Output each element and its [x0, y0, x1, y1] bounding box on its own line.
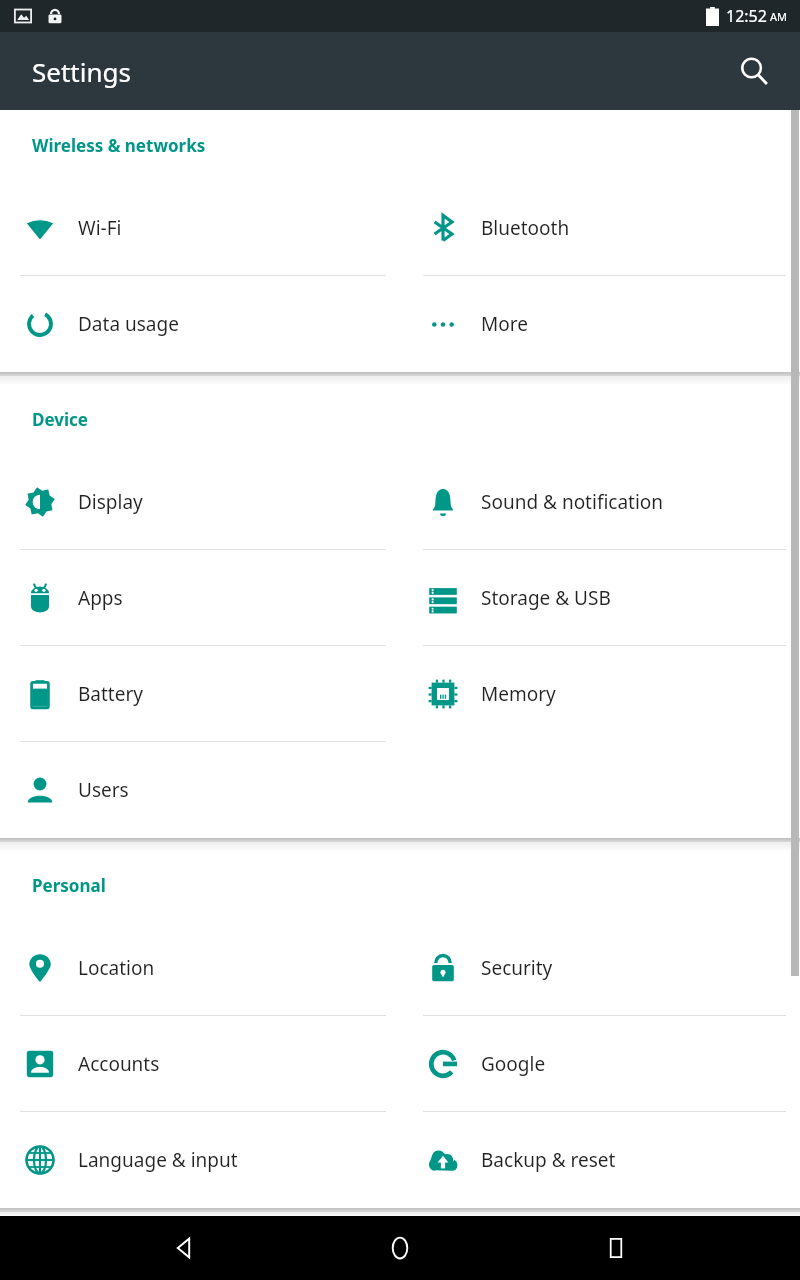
staticText: Location [78, 955, 155, 981]
button[interactable]: Recent apps [584, 1216, 648, 1280]
button[interactable]: Wi-Fi [0, 180, 400, 276]
staticText: Bluetooth [481, 215, 570, 241]
staticText: Battery [78, 681, 143, 707]
button[interactable]: Security [400, 920, 800, 1016]
button[interactable]: Bluetooth [400, 180, 800, 276]
staticText: Security [481, 955, 553, 981]
staticText: Users [78, 777, 129, 803]
staticText: Backup & reset [481, 1147, 616, 1173]
staticText: Accounts [78, 1051, 160, 1077]
button[interactable]: Data usage [0, 276, 400, 372]
button[interactable]: Language & input [0, 1112, 400, 1208]
button[interactable]: Search [728, 45, 780, 97]
button[interactable]: Users [0, 742, 400, 838]
button[interactable]: Accounts [0, 1016, 400, 1112]
staticText: Storage & USB [481, 585, 611, 611]
staticText: Google [481, 1051, 546, 1077]
staticText: Device [32, 408, 88, 431]
staticText: AM [770, 9, 788, 24]
staticText: Wi-Fi [78, 215, 122, 241]
button[interactable]: Location [0, 920, 400, 1016]
button[interactable]: Sound & notification [400, 454, 800, 550]
button[interactable]: Storage & USB [400, 550, 800, 646]
staticText: More [481, 311, 528, 337]
button[interactable]: Display [0, 454, 400, 550]
staticText: Settings [32, 54, 131, 89]
button[interactable]: More [400, 276, 800, 372]
staticText: Data usage [78, 311, 179, 337]
button[interactable]: Backup & reset [400, 1112, 800, 1208]
button[interactable]: Back [152, 1216, 216, 1280]
staticText: Apps [78, 585, 123, 611]
staticText: Display [78, 489, 143, 515]
button[interactable]: Google [400, 1016, 800, 1112]
button[interactable]: Memory [400, 646, 800, 742]
staticText: Language & input [78, 1147, 238, 1173]
staticText: Wireless & networks [32, 134, 206, 157]
button[interactable]: Battery [0, 646, 400, 742]
staticText: Personal [32, 874, 106, 897]
button[interactable]: Apps [0, 550, 400, 646]
staticText: Memory [481, 681, 556, 707]
staticText: 12:52 [726, 5, 767, 27]
staticText: Sound & notification [481, 489, 664, 515]
button[interactable]: Home [368, 1216, 432, 1280]
